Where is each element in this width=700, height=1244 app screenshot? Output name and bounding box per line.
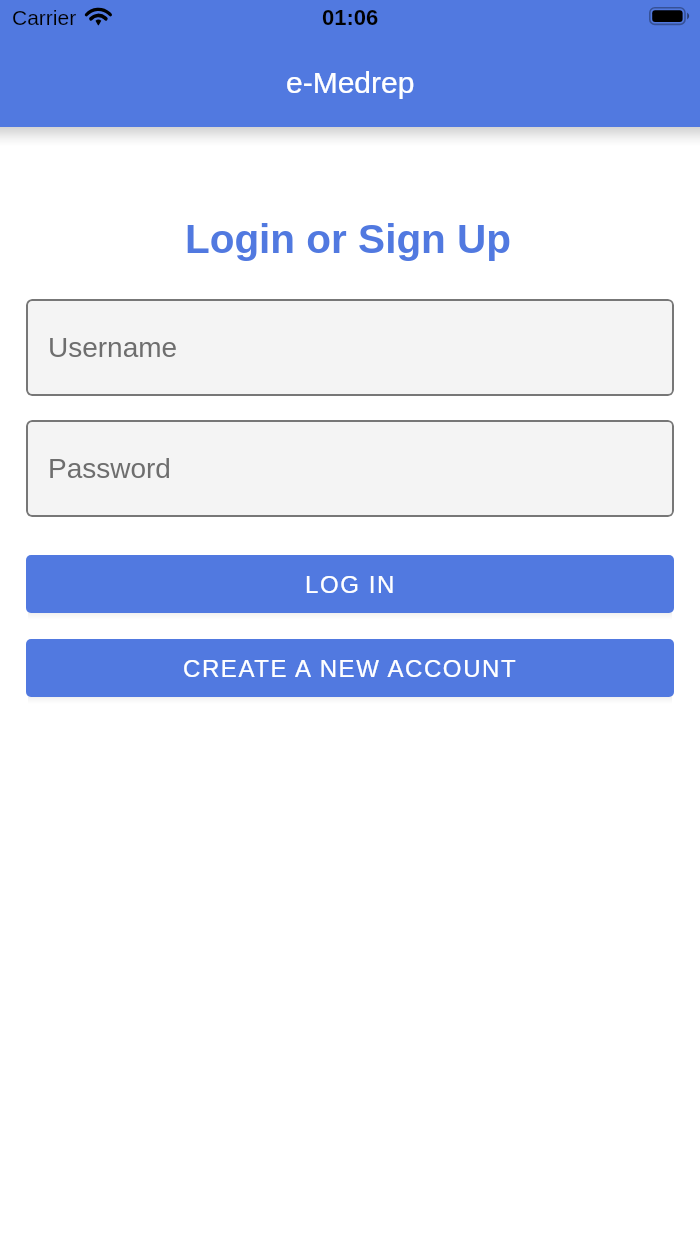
staticText: CREATE A NEW ACCOUNT: [183, 655, 518, 682]
button[interactable]: Username: [26, 299, 674, 396]
other: Wi-Fi: [83, 3, 113, 27]
staticText: LOG IN: [305, 571, 396, 598]
button[interactable]: LOG IN: [26, 555, 674, 613]
button[interactable]: CREATE A NEW ACCOUNT: [26, 639, 674, 697]
staticText: Username: [48, 332, 178, 363]
staticText: Carrier: [12, 6, 77, 29]
staticText: e-Medrep: [286, 66, 415, 100]
staticText: Password: [48, 453, 171, 484]
button[interactable]: Password: [26, 420, 674, 517]
staticText: Login or Sign Up: [0, 216, 698, 261]
staticText: 01:06: [322, 5, 379, 30]
other: Battery: [649, 7, 690, 26]
